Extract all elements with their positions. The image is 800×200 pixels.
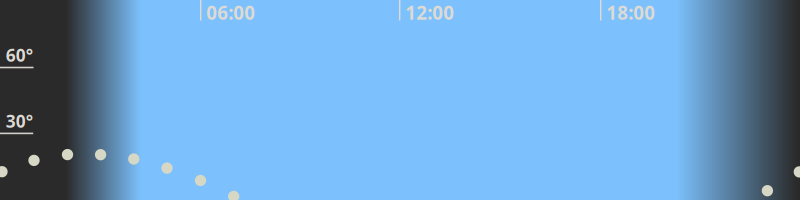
staticText: 06:00 xyxy=(206,0,255,25)
staticText: 30° xyxy=(6,109,33,132)
staticText: 12:00 xyxy=(405,0,454,25)
staticText: 18:00 xyxy=(606,0,655,25)
staticText: 60° xyxy=(6,44,33,67)
